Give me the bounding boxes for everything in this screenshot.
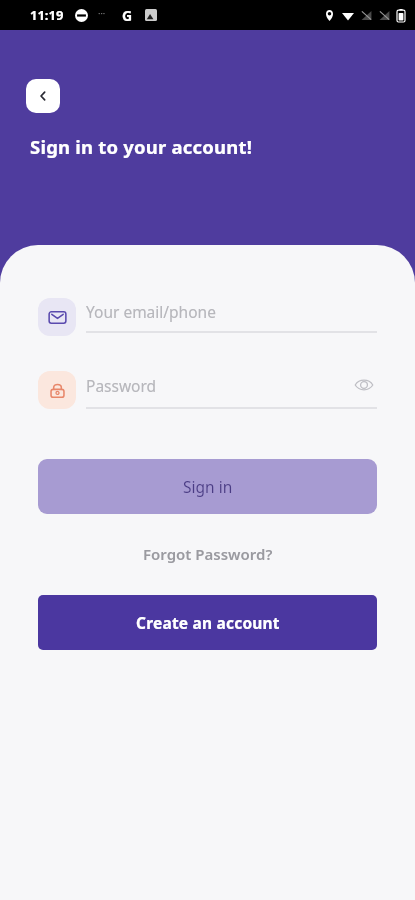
staticText: G [122,6,133,25]
staticText: Create an account [136,612,280,633]
staticText: 11:19 [30,6,64,24]
staticText: Forgot Password? [143,544,273,564]
staticText: Password [86,375,351,396]
staticText: Sign in to your account! [30,134,253,159]
button[interactable]: Back [26,79,60,113]
button[interactable]: Your email/phone [38,295,377,339]
button[interactable]: Forgot Password? [133,539,283,569]
button[interactable]: Password [38,368,377,412]
staticText: ··· [98,7,106,19]
staticText: Your email/phone [86,301,377,322]
button[interactable]: Show password [351,372,377,398]
button[interactable]: Create an account [38,595,377,650]
button[interactable]: Sign in [38,459,377,514]
staticText: Sign in [183,476,233,497]
